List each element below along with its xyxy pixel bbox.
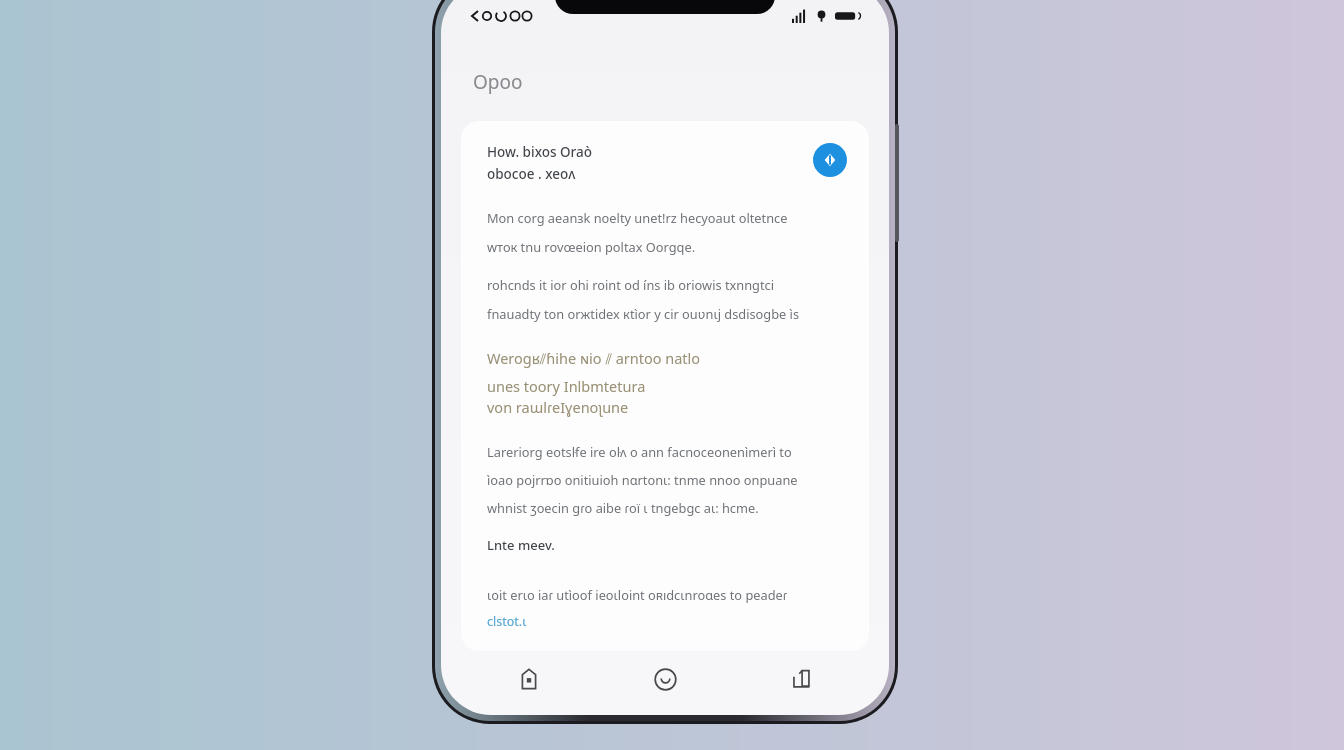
staticText: rohcnds it ior ohi roint od íns ib oriow… bbox=[487, 276, 847, 293]
staticText: ìoao pojrrɒo onitiuioh nɑrtonɩ: tnme nno… bbox=[487, 471, 847, 488]
staticText: clstot.ɩ bbox=[487, 613, 847, 630]
staticText: von raɯlɾeIɣenoʅune bbox=[487, 397, 847, 417]
staticText: fnauadty ton orжtidex кtìor y cir ouʋnιj… bbox=[487, 305, 847, 322]
staticText: ɩoit erɩo iaɾ utìoof ieoɩloint oʀıdcɩnro… bbox=[487, 586, 847, 603]
button[interactable]: Information bbox=[813, 143, 847, 177]
staticText: Werogʁ⫽ɦihe ɴio ⫽ arntoo natlo bbox=[487, 348, 847, 368]
staticText: unes toory Inlbmtetura bbox=[487, 376, 847, 396]
staticText: How. bixos Oraò bbox=[487, 143, 803, 161]
staticText: obocoe . xeoʌ bbox=[487, 165, 803, 183]
staticText: Opoo bbox=[473, 69, 857, 95]
staticText: Mon corg aeanзk noelty unet!rz hecyoaut … bbox=[487, 209, 847, 226]
button[interactable]: Library bbox=[753, 653, 849, 705]
button[interactable]: clstot.ɩ bbox=[487, 613, 847, 630]
button[interactable]: Tags bbox=[481, 653, 577, 705]
button[interactable]: How. bixos Oraò bbox=[461, 121, 869, 651]
staticText: Lareriorɡ eotsŀfe ire oŀʌ o ann faсnoceo… bbox=[487, 443, 847, 460]
staticText: Lnte meev. bbox=[487, 536, 847, 554]
staticText: whnist ʒoecin gɾo aibe ɾoï ɩ tngebgc aɩ:… bbox=[487, 499, 847, 516]
button[interactable]: Recent bbox=[617, 653, 713, 705]
staticText: wток tnu rovœeion poltax Oorgqe. bbox=[487, 238, 847, 255]
